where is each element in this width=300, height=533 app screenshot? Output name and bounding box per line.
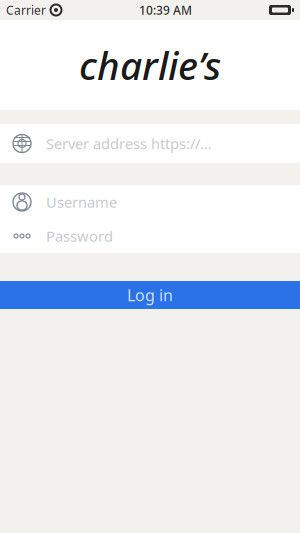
- staticText: Carrier: [6, 2, 46, 18]
- staticText: Log in: [127, 284, 173, 306]
- button[interactable]: Username: [0, 185, 300, 219]
- button[interactable]: Log in: [0, 281, 300, 309]
- button[interactable]: Server address https://…: [0, 124, 300, 163]
- staticText: Username: [46, 192, 117, 212]
- staticText: Server address https://…: [46, 134, 212, 153]
- staticText: charlie’s: [79, 39, 221, 91]
- button[interactable]: Password: [0, 219, 300, 253]
- staticText: Password: [46, 226, 113, 246]
- staticText: 10:39 AM: [139, 2, 192, 18]
